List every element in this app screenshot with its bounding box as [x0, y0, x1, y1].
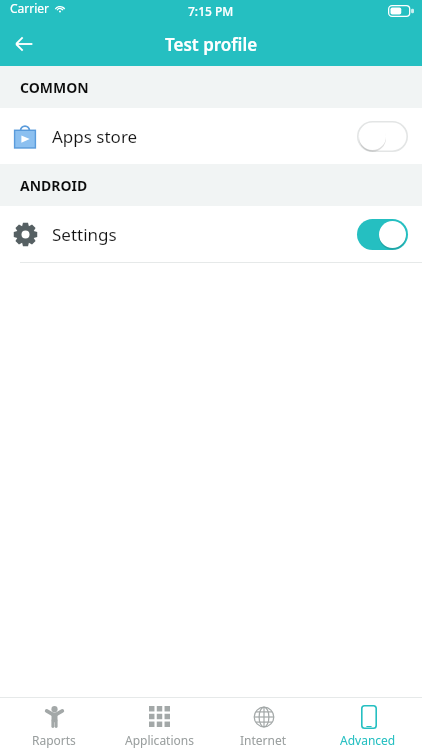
- button[interactable]: Off: [357, 121, 408, 152]
- staticText: Raports: [32, 732, 76, 748]
- button[interactable]: Raports: [4, 701, 104, 748]
- button[interactable]: Apps store: [0, 108, 422, 164]
- staticText: Applications: [125, 732, 194, 748]
- staticText: Apps store: [52, 125, 138, 148]
- staticText: Test profile: [165, 33, 258, 56]
- staticText: Carrier: [10, 0, 50, 16]
- button[interactable]: On: [357, 219, 408, 250]
- staticText: Advanced: [340, 732, 396, 748]
- button[interactable]: Internet: [213, 701, 313, 748]
- button[interactable]: Settings: [0, 206, 422, 262]
- staticText: Settings: [52, 223, 117, 246]
- staticText: 7:15 PM: [188, 3, 234, 19]
- button[interactable]: Advanced: [318, 701, 418, 748]
- button[interactable]: Applications: [109, 701, 209, 748]
- staticText: ANDROID: [20, 176, 88, 195]
- staticText: COMMON: [20, 78, 89, 97]
- button[interactable]: Back: [0, 22, 48, 66]
- staticText: Internet: [240, 732, 287, 748]
